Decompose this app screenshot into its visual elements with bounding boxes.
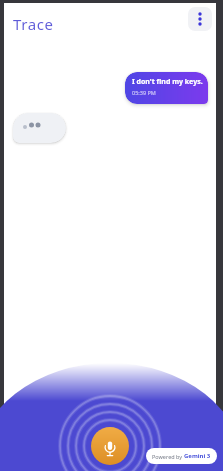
staticText: Powered by bbox=[152, 453, 184, 460]
staticText: Trace bbox=[13, 14, 54, 34]
staticText: Gemini 3 bbox=[184, 452, 211, 460]
staticText: I don't find my keys. bbox=[132, 77, 203, 87]
staticText: 05:39 PM bbox=[132, 89, 156, 96]
